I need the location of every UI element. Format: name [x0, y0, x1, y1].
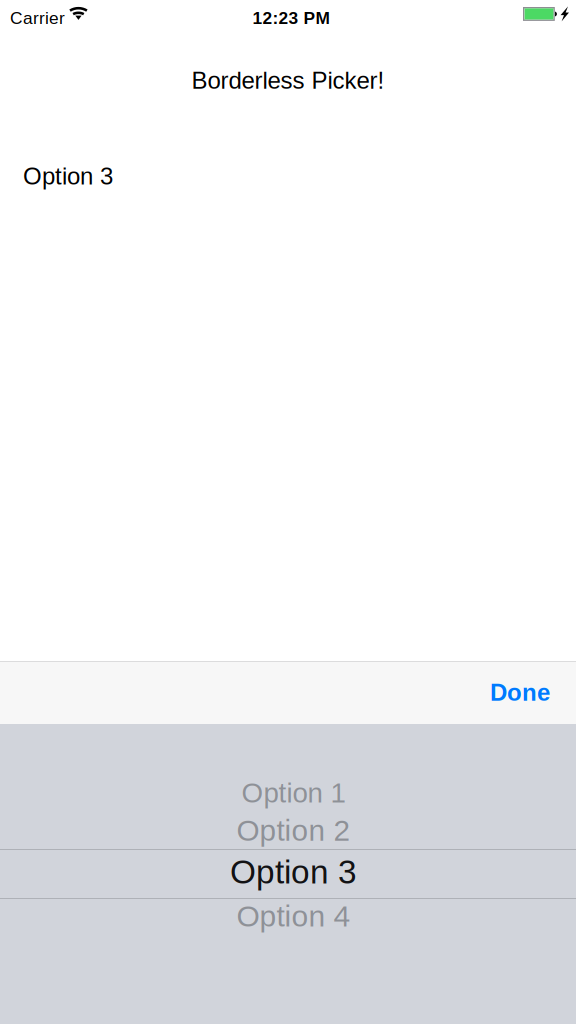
button[interactable]: Option 4 [0, 897, 576, 935]
button[interactable]: Done [476, 661, 564, 720]
button[interactable]: Option 1 [0, 774, 576, 812]
staticText: Option 4 [236, 899, 350, 933]
staticText: Option 3 [23, 163, 113, 190]
staticText: Done [490, 679, 550, 706]
staticText: 12:23 PM [252, 8, 329, 28]
staticText: Borderless Picker! [191, 67, 384, 94]
staticText: Option 2 [236, 814, 350, 847]
staticText: Option 1 [241, 777, 345, 808]
staticText: Carrier [10, 8, 65, 28]
staticText: Option 3 [230, 853, 357, 891]
button[interactable]: Option 2 [0, 812, 576, 849]
button[interactable]: Option 3 [0, 849, 576, 895]
